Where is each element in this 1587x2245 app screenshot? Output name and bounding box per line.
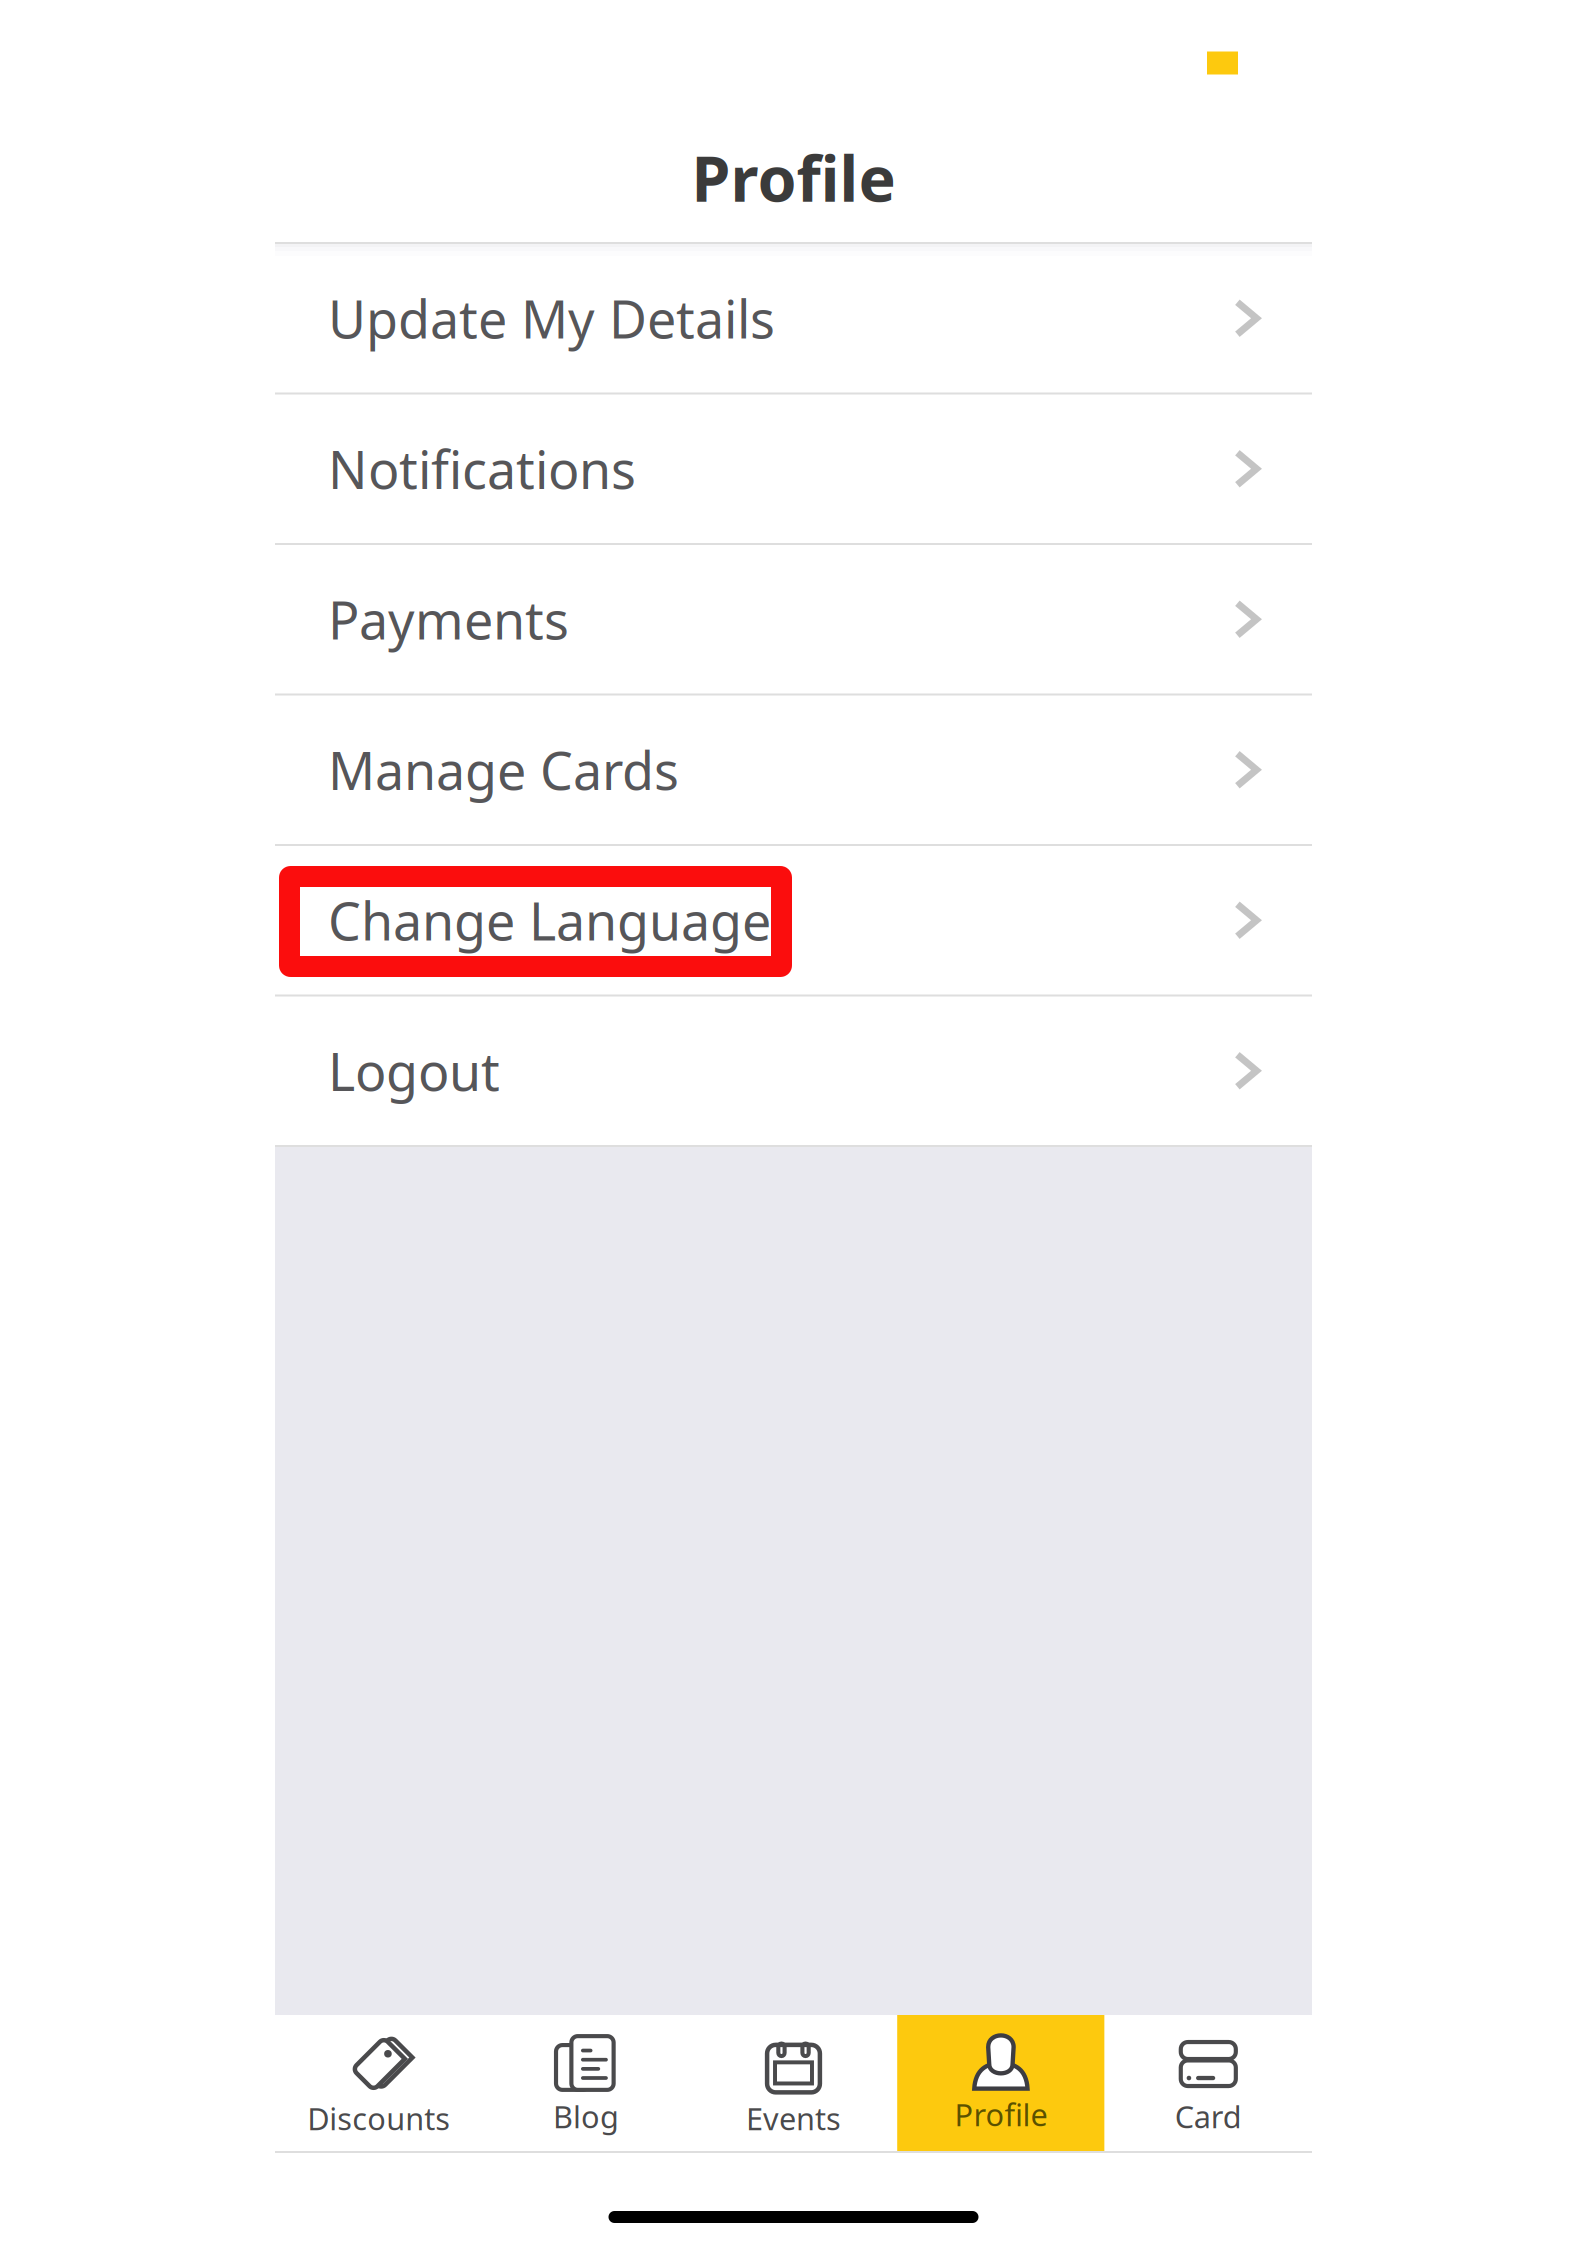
staticText: Blog	[553, 2096, 619, 2137]
staticText: Events	[746, 2098, 841, 2139]
staticText: Card	[1175, 2096, 1242, 2137]
button[interactable]: Update My Details	[275, 244, 1312, 394]
staticText: Logout	[328, 1036, 500, 1105]
staticText: Manage Cards	[328, 735, 679, 804]
staticText: Discounts	[307, 2098, 450, 2139]
button[interactable]: Discounts	[275, 2015, 482, 2151]
staticText: Change Language	[328, 886, 771, 955]
button[interactable]: Manage Cards	[275, 695, 1312, 846]
button[interactable]: Card	[1105, 2015, 1312, 2151]
button[interactable]: Logout	[275, 996, 1312, 1147]
button[interactable]: Events	[690, 2015, 897, 2151]
staticText: Profile	[954, 2094, 1047, 2135]
staticText: Payments	[328, 585, 569, 654]
staticText: Update My Details	[328, 284, 775, 353]
staticText: Profile	[691, 136, 895, 219]
button[interactable]: Profile	[897, 2015, 1105, 2151]
button[interactable]: Blog	[482, 2015, 690, 2151]
button[interactable]: Notifications	[275, 394, 1312, 545]
staticText: Notifications	[328, 434, 636, 503]
button[interactable]: Change Language	[275, 846, 1312, 996]
button[interactable]: Payments	[275, 545, 1312, 695]
